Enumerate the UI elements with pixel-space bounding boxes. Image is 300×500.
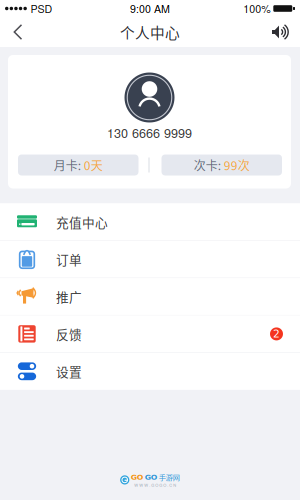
button[interactable]: 充值中心 (0, 203, 300, 240)
staticText: 设置 (56, 362, 82, 380)
staticText: 0天 (84, 156, 103, 174)
button[interactable]: Back (0, 17, 35, 47)
staticText: 反馈 (56, 325, 82, 343)
staticText: W W W . G O G O . C N (134, 482, 176, 488)
staticText: 推广 (56, 287, 82, 306)
staticText: 99次 (224, 156, 250, 174)
button[interactable]: 反馈 (0, 315, 300, 352)
staticText: 2 (273, 328, 280, 340)
staticText: GO (145, 473, 158, 482)
staticText: 次卡: (194, 156, 224, 174)
staticText: 订单 (56, 250, 82, 268)
button[interactable]: 订单 (0, 241, 300, 278)
button[interactable]: Sound (260, 17, 300, 47)
staticText: 手游网 (159, 472, 180, 482)
button[interactable]: 推广 (0, 278, 300, 315)
staticText: 充值中心 (56, 213, 108, 231)
staticText: GO (131, 473, 144, 482)
staticText: 130 6666 9999 (107, 123, 192, 141)
staticText: 个人中心 (120, 21, 180, 43)
staticText: 100% (243, 1, 270, 16)
staticText: 月卡: (54, 156, 84, 174)
staticText: 9:00 AM (130, 1, 170, 16)
staticText: PSD (30, 1, 52, 16)
button[interactable]: 设置 (0, 353, 300, 390)
